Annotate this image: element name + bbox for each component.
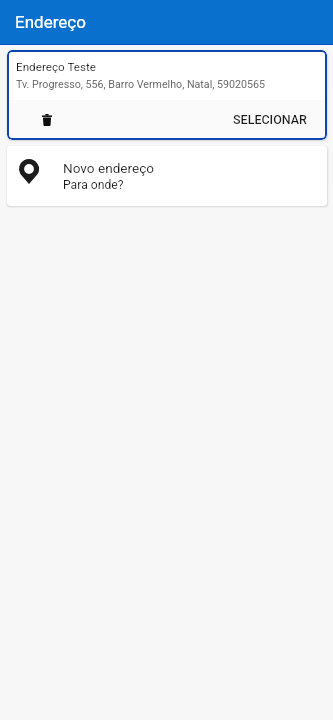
staticText: Novo endereço xyxy=(63,160,155,176)
staticText: Para onde? xyxy=(63,178,124,192)
button[interactable]: Novo endereço xyxy=(7,146,327,206)
staticText: Endereço xyxy=(15,12,86,32)
button[interactable]: SELECIONAR xyxy=(225,106,315,133)
button[interactable]: Excluir endereço xyxy=(34,107,60,133)
staticText: Endereço Teste xyxy=(16,60,97,74)
staticText: Tv. Progresso, 556, Barro Vermelho, Nata… xyxy=(16,78,266,91)
staticText: SELECIONAR xyxy=(233,112,307,127)
